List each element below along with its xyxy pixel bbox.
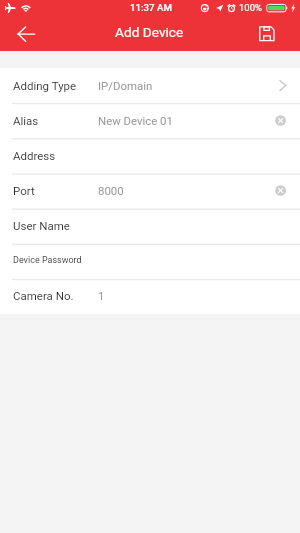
button[interactable]: Camera No. bbox=[0, 278, 300, 313]
button[interactable]: Alias bbox=[0, 103, 300, 138]
staticText: Device Password bbox=[13, 255, 82, 266]
staticText: Alias bbox=[13, 114, 39, 127]
staticText: New Device 01 bbox=[98, 114, 173, 127]
button[interactable]: Save bbox=[256, 16, 300, 51]
staticText: 11:37 AM bbox=[130, 2, 172, 13]
button[interactable]: Choose adding type bbox=[274, 68, 300, 103]
staticText: 100% bbox=[239, 2, 262, 13]
staticText: Adding Type bbox=[13, 79, 77, 92]
staticText: 8000 bbox=[98, 184, 124, 197]
button[interactable]: Address bbox=[0, 138, 300, 173]
staticText: 1 bbox=[98, 289, 105, 302]
staticText: IP/Domain bbox=[98, 79, 153, 92]
staticText: Port bbox=[13, 184, 35, 197]
button[interactable]: Adding Type bbox=[0, 68, 300, 103]
button[interactable]: Clear bbox=[270, 103, 300, 138]
button[interactable]: User Name bbox=[0, 208, 300, 243]
button[interactable]: Clear bbox=[270, 173, 300, 208]
staticText: Add Device bbox=[115, 24, 184, 40]
button[interactable]: Port bbox=[0, 173, 300, 208]
button[interactable]: Device Password bbox=[0, 243, 300, 278]
staticText: Camera No. bbox=[13, 289, 74, 302]
button[interactable]: Back bbox=[0, 16, 46, 51]
staticText: Address bbox=[13, 149, 56, 162]
staticText: User Name bbox=[13, 219, 70, 232]
